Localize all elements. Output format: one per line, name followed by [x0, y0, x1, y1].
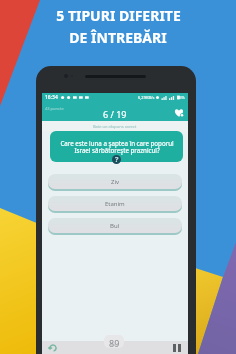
staticText: ?	[115, 155, 119, 164]
staticText: Bate un răspuns corect	[93, 124, 137, 129]
staticText: 5 TIPURI DIFERITE	[56, 6, 181, 25]
staticText: 45%	[177, 95, 185, 100]
button[interactable]: Ziv	[48, 174, 182, 189]
staticText: Bul	[110, 222, 120, 230]
button[interactable]: Undo	[47, 342, 58, 353]
staticText: 16:34	[45, 94, 58, 101]
staticText: 43 puncte	[45, 106, 64, 111]
button[interactable]: Help	[112, 155, 121, 164]
button[interactable]: Favorite	[173, 106, 185, 118]
button[interactable]: Etanim	[48, 196, 182, 211]
staticText: 6,29KB/s	[138, 95, 155, 100]
button[interactable]: Bul	[48, 218, 182, 233]
button[interactable]: Pause	[172, 342, 182, 353]
staticText: Ziv	[111, 178, 120, 186]
button[interactable]: 89	[104, 335, 124, 348]
staticText: Etanim	[105, 200, 125, 208]
staticText: nivel	[111, 343, 118, 347]
button[interactable]: Care este luna a şaptea în care poporul …	[50, 131, 183, 162]
staticText: 89	[109, 337, 120, 348]
staticText: 6 / 19	[103, 108, 127, 120]
staticText: Care este luna a şaptea în care poporul …	[60, 139, 174, 155]
staticText: DE ÎNTREBĂRI	[69, 28, 167, 47]
